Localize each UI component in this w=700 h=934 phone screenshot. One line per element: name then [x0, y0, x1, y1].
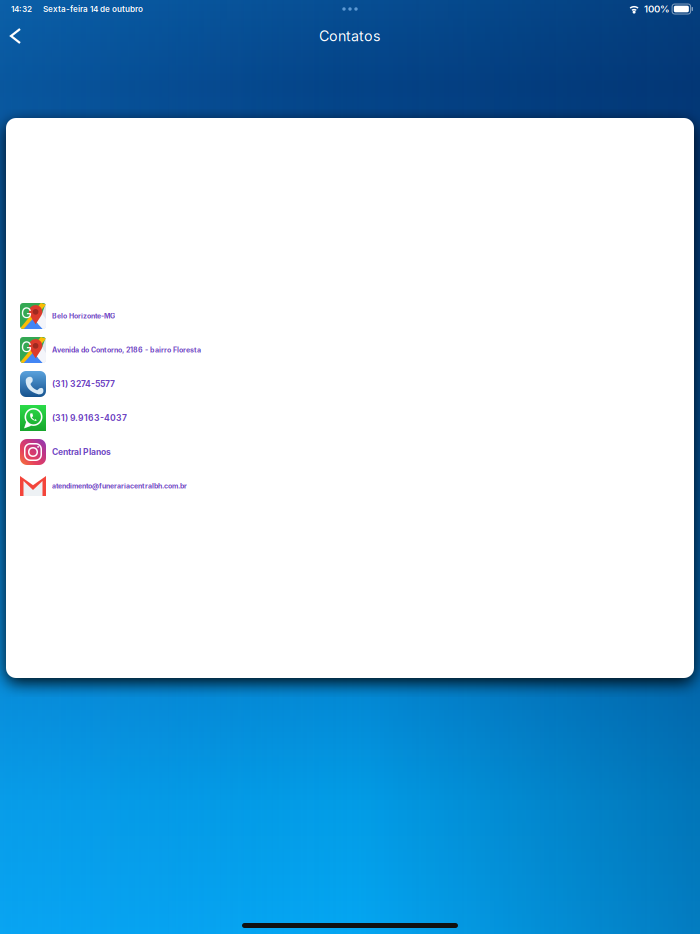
staticText: Belo Horizonte-MG: [52, 312, 115, 320]
button[interactable]: G: [6, 333, 694, 367]
staticText: atendimento@funerariacentralbh.com.br: [52, 482, 187, 490]
staticText: G: [21, 304, 32, 322]
staticText: 100%: [644, 3, 670, 15]
button[interactable]: Back: [0, 18, 34, 54]
button[interactable]: atendimento@funerariacentralbh.com.br: [6, 469, 694, 503]
staticText: Sexta-feira 14 de outubro: [43, 4, 143, 14]
button[interactable]: Central Planos: [6, 435, 694, 469]
staticText: Avenida do Contorno, 2186 - bairro Flore…: [52, 346, 201, 354]
staticText: G: [21, 338, 32, 356]
staticText: Contatos: [319, 27, 381, 45]
button[interactable]: (31) 3274-5577: [6, 367, 694, 401]
button[interactable]: (31) 9.9163-4037: [6, 401, 694, 435]
button[interactable]: G: [6, 299, 694, 333]
staticText: 14:32: [11, 4, 32, 14]
staticText: (31) 9.9163-4037: [52, 413, 127, 423]
staticText: (31) 3274-5577: [52, 379, 115, 389]
staticText: Central Planos: [52, 447, 111, 457]
